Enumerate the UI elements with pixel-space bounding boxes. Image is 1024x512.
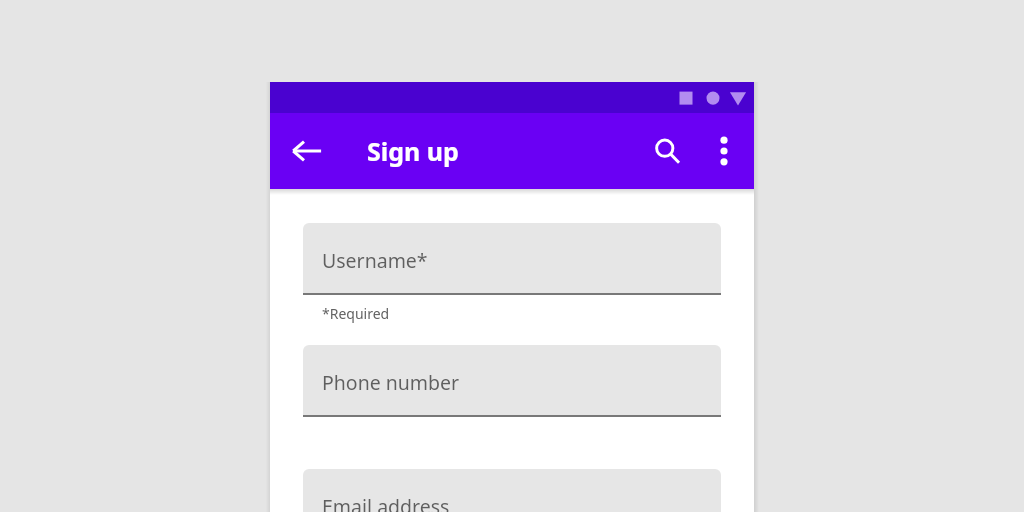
button[interactable]: Navigate up <box>281 125 333 177</box>
button[interactable]: Search <box>641 125 693 177</box>
staticText: Sign up <box>367 134 459 168</box>
button[interactable]: Username* <box>303 223 721 295</box>
staticText: Username* <box>322 247 428 274</box>
button[interactable]: Email address <box>303 469 721 512</box>
staticText: Email address <box>322 493 450 512</box>
button[interactable]: More options <box>698 125 750 177</box>
staticText: *Required <box>322 304 390 323</box>
button[interactable]: Phone number <box>303 345 721 417</box>
staticText: Phone number <box>322 369 460 396</box>
